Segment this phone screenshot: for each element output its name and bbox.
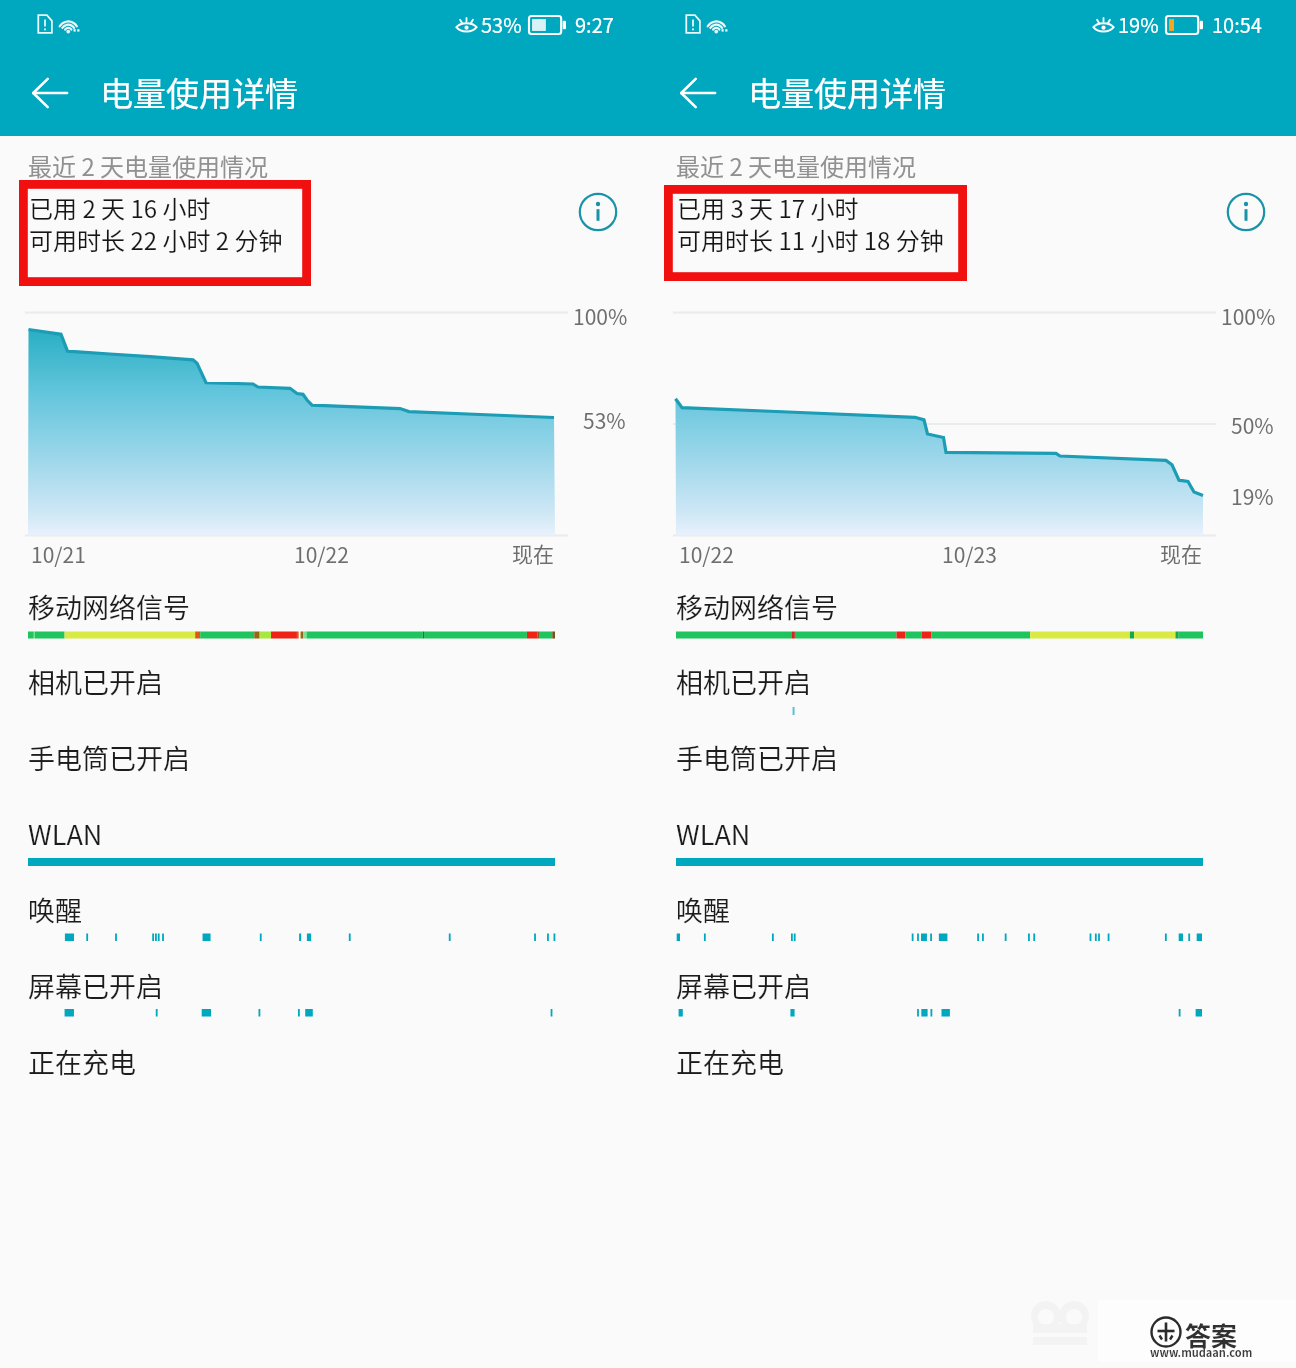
staticText: 9:27	[575, 10, 614, 39]
staticText: 10/21	[31, 539, 86, 569]
staticText: 手电筒已开启	[676, 738, 838, 777]
staticText: 最近 2 天电量使用情况	[676, 148, 917, 183]
button[interactable]: Back	[662, 58, 734, 128]
button[interactable]: Info	[1222, 188, 1270, 236]
staticText: 53%	[583, 405, 626, 435]
staticText: 100%	[1221, 301, 1276, 331]
staticText: 可用时长 11 小时 18 分钟	[677, 222, 944, 257]
staticText: 屏幕已开启	[28, 966, 163, 1005]
staticText: 10/22	[294, 539, 349, 569]
button[interactable]: 手电筒已开启	[648, 726, 1296, 800]
button[interactable]: Back	[14, 58, 86, 128]
staticText: 100%	[573, 301, 628, 331]
staticText: 相机已开启	[676, 662, 811, 701]
staticText: WLAN	[676, 814, 751, 853]
staticText: 正在充电	[676, 1042, 784, 1081]
staticText: 答案	[1185, 1316, 1238, 1354]
button[interactable]: Info	[574, 188, 622, 236]
staticText: 唤醒	[28, 890, 82, 929]
button[interactable]: WLAN	[0, 802, 648, 876]
staticText: 手电筒已开启	[28, 738, 190, 777]
staticText: 19%	[1118, 10, 1159, 39]
staticText: 已用 2 天 16 小时	[29, 190, 211, 225]
staticText: 已用 3 天 17 小时	[677, 190, 859, 225]
button[interactable]: 正在充电	[648, 1030, 1296, 1104]
button[interactable]: 唤醒	[648, 878, 1296, 952]
staticText: 屏幕已开启	[676, 966, 811, 1005]
button[interactable]: 屏幕已开启	[0, 954, 648, 1028]
staticText: 53%	[481, 10, 522, 39]
button[interactable]: 唤醒	[0, 878, 648, 952]
staticText: 唤醒	[676, 890, 730, 929]
staticText: www.mudaan.com	[1150, 1344, 1253, 1360]
staticText: 10/23	[942, 539, 997, 569]
staticText: 移动网络信号	[676, 587, 838, 626]
button[interactable]: 正在充电	[0, 1030, 648, 1104]
staticText: 现在	[1160, 538, 1202, 568]
button[interactable]: 相机已开启	[0, 650, 648, 724]
staticText: 移动网络信号	[28, 587, 190, 626]
staticText: 50%	[1231, 410, 1274, 440]
staticText: 现在	[512, 538, 554, 568]
staticText: 10:54	[1212, 10, 1262, 39]
button[interactable]: WLAN	[648, 802, 1296, 876]
staticText: WLAN	[28, 814, 103, 853]
staticText: 正在充电	[28, 1042, 136, 1081]
button[interactable]: 移动网络信号	[0, 575, 648, 649]
button[interactable]: 相机已开启	[648, 650, 1296, 724]
staticText: 10/22	[679, 539, 734, 569]
staticText: 19%	[1231, 481, 1274, 511]
staticText: 电量使用详情	[748, 68, 946, 116]
button[interactable]: 屏幕已开启	[648, 954, 1296, 1028]
button[interactable]: 移动网络信号	[648, 575, 1296, 649]
staticText: 电量使用详情	[100, 68, 298, 116]
staticText: 最近 2 天电量使用情况	[28, 148, 269, 183]
staticText: 可用时长 22 小时 2 分钟	[29, 222, 283, 257]
button[interactable]: 手电筒已开启	[0, 726, 648, 800]
staticText: 相机已开启	[28, 662, 163, 701]
